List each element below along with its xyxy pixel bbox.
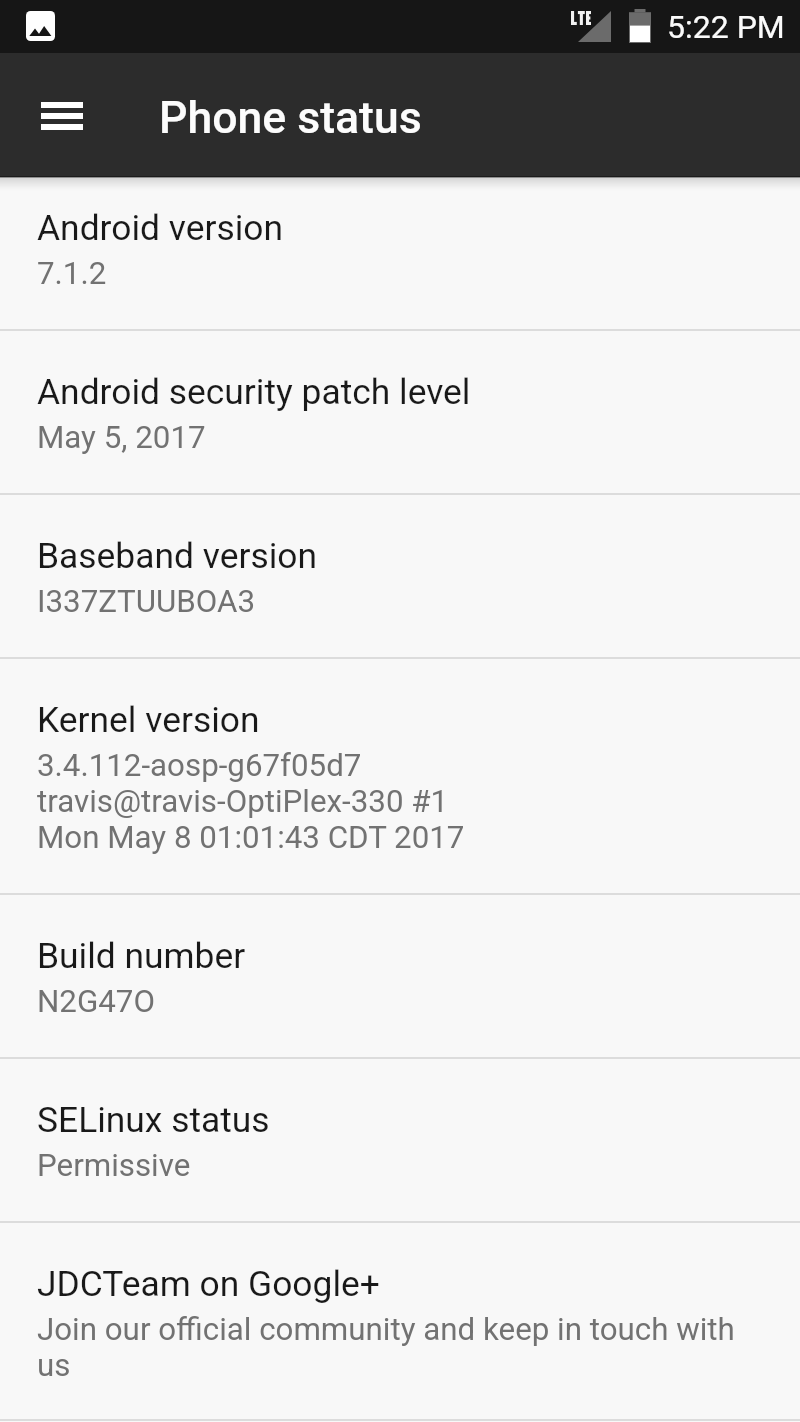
- staticText: Android security patch level: [37, 370, 471, 413]
- staticText: 7.1.2: [37, 255, 107, 291]
- button[interactable]: JDCTeam on Google+: [0, 1223, 800, 1421]
- button[interactable]: Android version: [0, 167, 800, 331]
- button[interactable]: Open navigation drawer: [12, 66, 112, 166]
- staticText: N2G47O: [37, 983, 155, 1019]
- staticText: SELinux status: [37, 1098, 270, 1141]
- staticText: Phone status: [159, 92, 422, 144]
- button[interactable]: SELinux status: [0, 1059, 800, 1223]
- button[interactable]: Build number: [0, 895, 800, 1059]
- staticText: 3.4.112-aosp-g67f05d7 travis@travis-Opti…: [37, 747, 465, 855]
- staticText: Android version: [37, 206, 284, 249]
- other: Battery 55 percent: [629, 9, 651, 43]
- staticText: Kernel version: [37, 698, 260, 741]
- other: LTE: [571, 11, 591, 25]
- staticText: Baseband version: [37, 534, 318, 577]
- button[interactable]: Baseband version: [0, 495, 800, 659]
- other: Screenshot captured: [26, 11, 55, 41]
- button[interactable]: Android security patch level: [0, 331, 800, 495]
- staticText: Build number: [37, 934, 246, 977]
- staticText: I337ZTUUBOA3: [37, 583, 256, 619]
- staticText: Join our official community and keep in …: [37, 1311, 772, 1383]
- button[interactable]: Kernel version: [0, 659, 800, 895]
- staticText: May 5, 2017: [37, 419, 206, 455]
- staticText: 5:22 PM: [667, 8, 785, 46]
- staticText: Permissive: [37, 1147, 191, 1183]
- staticText: JDCTeam on Google+: [37, 1262, 380, 1305]
